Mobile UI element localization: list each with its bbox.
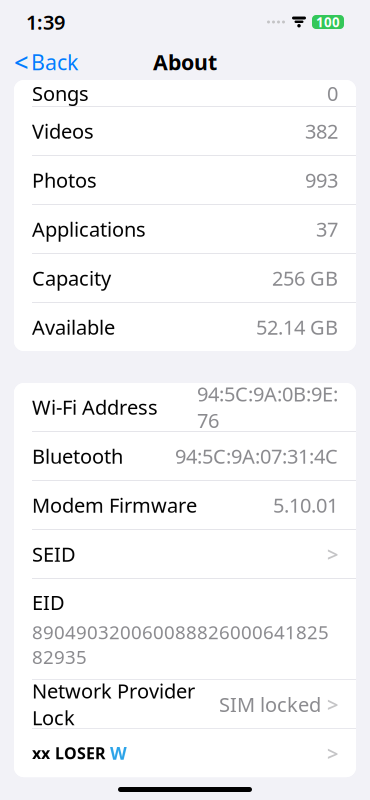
staticText: Capacity	[32, 265, 111, 291]
staticText: Videos	[32, 118, 94, 144]
staticText: 94:5C:9A:0B:9E:76	[197, 380, 338, 433]
staticText: SIM locked	[219, 691, 321, 717]
staticText: Back	[31, 48, 78, 76]
staticText: LOSER	[55, 742, 105, 764]
staticText: 0	[327, 80, 338, 107]
button[interactable]: Bluetooth	[14, 432, 356, 480]
button[interactable]: Available	[14, 303, 356, 351]
button[interactable]: SEID	[14, 530, 356, 578]
staticText: 100	[316, 13, 340, 31]
staticText: >	[327, 740, 338, 766]
staticText: Photos	[32, 167, 97, 193]
button[interactable]: EID	[14, 579, 356, 679]
button[interactable]: Videos	[14, 107, 356, 155]
staticText: 256 GB	[272, 265, 338, 291]
staticText: 5.10.01	[273, 492, 338, 518]
staticText: 1:39	[26, 9, 65, 35]
staticText: Available	[32, 314, 115, 340]
staticText: Songs	[32, 80, 89, 107]
staticText: 993	[305, 167, 338, 193]
staticText: >	[327, 541, 338, 567]
button[interactable]: LOSER carrier	[14, 729, 356, 777]
button[interactable]: Songs	[14, 80, 356, 106]
staticText: W	[110, 742, 127, 765]
staticText: Applications	[32, 216, 146, 242]
button[interactable]: Capacity	[14, 254, 356, 302]
staticText: 382	[305, 118, 338, 144]
staticText: xx	[32, 742, 50, 764]
staticText: Network Provider Lock	[32, 678, 195, 731]
button[interactable]: Photos	[14, 156, 356, 204]
button[interactable]: Applications	[14, 205, 356, 253]
button[interactable]: <	[0, 44, 92, 80]
staticText: 37	[316, 216, 338, 242]
staticText: About	[153, 48, 217, 76]
staticText: Wi-Fi Address	[32, 394, 158, 420]
staticText: EID	[32, 589, 65, 616]
button[interactable]: Network Provider Lock	[14, 680, 356, 728]
staticText: >	[327, 691, 338, 717]
staticText: 89049032006008882600064182582935	[32, 620, 329, 669]
staticText: Modem Firmware	[32, 492, 197, 518]
staticText: SEID	[32, 541, 76, 567]
button[interactable]: Wi-Fi Address	[14, 383, 356, 431]
staticText: 94:5C:9A:07:31:4C	[175, 443, 338, 469]
staticText: <	[14, 45, 28, 79]
button[interactable]: Modem Firmware	[14, 481, 356, 529]
staticText: Bluetooth	[32, 443, 123, 469]
staticText: 52.14 GB	[256, 314, 338, 340]
